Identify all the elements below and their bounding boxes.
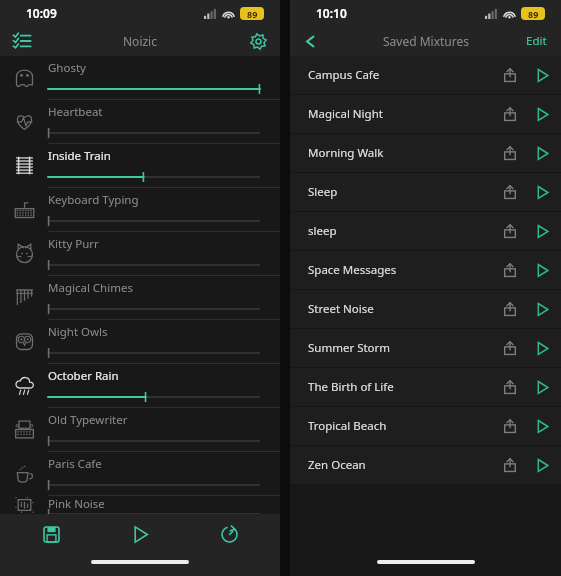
button[interactable]: Share The Birth of Life [493, 370, 527, 404]
button[interactable]: Ghosty [0, 56, 280, 99]
button[interactable]: The Birth of Life [290, 368, 561, 406]
staticText: Space Messages [308, 262, 493, 278]
button[interactable]: Share Sleep [493, 175, 527, 209]
button[interactable]: Campus Cafe [290, 56, 561, 94]
button[interactable]: Share Zen Ocean [493, 448, 527, 482]
button[interactable]: Street Noise [290, 290, 561, 328]
button[interactable]: Keyboard Typing [0, 188, 280, 231]
staticText: Zen Ocean [308, 457, 493, 473]
staticText: Heartbeat [48, 104, 103, 120]
staticText: Magical Night [308, 106, 493, 122]
staticText: Noizic [123, 33, 157, 49]
button[interactable]: Play Morning Walk [527, 136, 557, 170]
button[interactable]: Play Tropical Beach [527, 409, 557, 443]
button[interactable]: Share Magical Night [493, 97, 527, 131]
button[interactable]: Morning Walk [290, 134, 561, 172]
button[interactable]: Night Owls [0, 320, 280, 363]
staticText: Tropical Beach [308, 418, 493, 434]
staticText: Sleep [308, 184, 493, 200]
button[interactable]: Sleep [290, 173, 561, 211]
button[interactable]: Share Morning Walk [493, 136, 527, 170]
button[interactable]: Space Messages [290, 251, 561, 289]
staticText: Night Owls [48, 324, 108, 340]
button[interactable]: Play Street Noise [527, 292, 557, 326]
button[interactable]: Edit [522, 29, 551, 53]
staticText: 10:10 [316, 5, 347, 21]
button[interactable]: Share Summer Storm [493, 331, 527, 365]
staticText: October Rain [48, 368, 119, 384]
button[interactable]: Back [296, 27, 324, 55]
staticText: Campus Cafe [308, 67, 493, 83]
button[interactable]: Zen Ocean [290, 446, 561, 484]
staticText: Morning Walk [308, 145, 493, 161]
staticText: Paris Cafe [48, 456, 102, 472]
button[interactable]: Play The Birth of Life [527, 370, 557, 404]
button[interactable]: Play Campus Cafe [527, 58, 557, 92]
button[interactable]: Play Magical Night [527, 97, 557, 131]
button[interactable]: Kitty Purr [0, 232, 280, 275]
staticText: Inside Train [48, 148, 111, 164]
staticText: Keyboard Typing [48, 192, 139, 208]
button[interactable]: Play [94, 514, 187, 554]
button[interactable]: Share Tropical Beach [493, 409, 527, 443]
button[interactable]: Magical Chimes [0, 276, 280, 319]
button[interactable]: Settings [244, 27, 272, 55]
staticText: Old Typewriter [48, 412, 128, 428]
staticText: Street Noise [308, 301, 493, 317]
button[interactable]: Timer [187, 514, 280, 554]
staticText: Magical Chimes [48, 280, 133, 296]
button[interactable]: Pink Noise [0, 496, 280, 514]
button[interactable]: Play Summer Storm [527, 331, 557, 365]
button[interactable]: Share Space Messages [493, 253, 527, 287]
button[interactable]: Inside Train [0, 144, 280, 187]
button[interactable]: Sound list [8, 27, 36, 55]
button[interactable]: Share Campus Cafe [493, 58, 527, 92]
staticText: Edit [526, 33, 547, 49]
button[interactable]: Magical Night [290, 95, 561, 133]
staticText: sleep [308, 223, 493, 239]
button[interactable]: Play Zen Ocean [527, 448, 557, 482]
button[interactable]: Old Typewriter [0, 408, 280, 451]
staticText: Pink Noise [48, 496, 105, 512]
button[interactable]: Play Sleep [527, 175, 557, 209]
button[interactable]: Share Street Noise [493, 292, 527, 326]
staticText: Ghosty [48, 60, 86, 76]
button[interactable]: Summer Storm [290, 329, 561, 367]
staticText: 10:09 [26, 5, 57, 21]
button[interactable]: Play sleep [527, 214, 557, 248]
staticText: Saved Mixtures [383, 33, 469, 49]
button[interactable]: Share sleep [493, 214, 527, 248]
staticText: The Birth of Life [308, 379, 493, 395]
staticText: Summer Storm [308, 340, 493, 356]
staticText: Kitty Purr [48, 236, 99, 252]
button[interactable]: Paris Cafe [0, 452, 280, 495]
staticText: 89 [528, 8, 539, 20]
button[interactable]: October Rain [0, 364, 280, 407]
button[interactable]: Heartbeat [0, 100, 280, 143]
button[interactable]: Tropical Beach [290, 407, 561, 445]
button[interactable]: Play Space Messages [527, 253, 557, 287]
button[interactable]: Save mixture [0, 514, 94, 554]
staticText: 89 [247, 8, 258, 20]
button[interactable]: sleep [290, 212, 561, 250]
